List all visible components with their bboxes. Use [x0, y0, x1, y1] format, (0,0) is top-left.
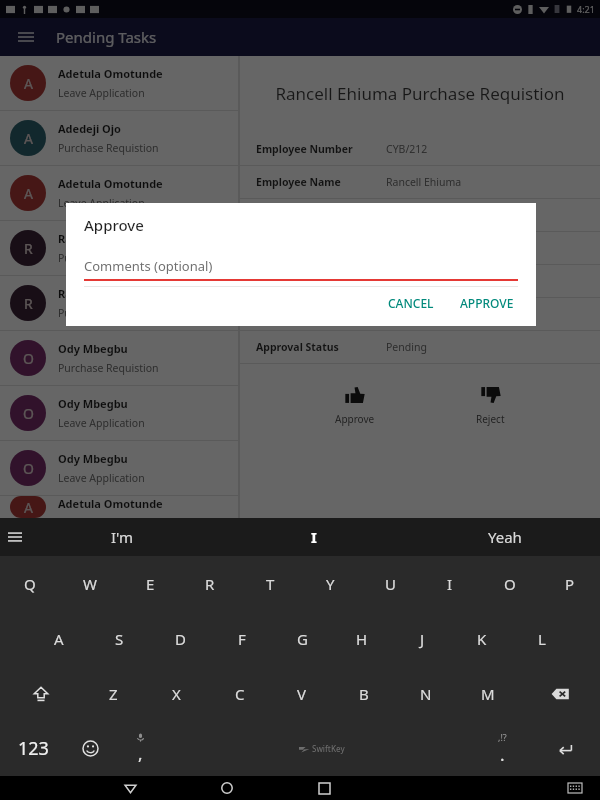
staticText: I: [311, 527, 317, 547]
staticText: R: [24, 294, 33, 313]
button[interactable]: A: [0, 56, 238, 110]
staticText: Ody Mbegbu: [58, 396, 128, 411]
button[interactable]: Q: [0, 556, 60, 611]
button[interactable]: H: [332, 611, 392, 666]
staticText: O: [23, 459, 34, 478]
button[interactable]: A: [0, 166, 238, 220]
button[interactable]: A: [28, 611, 89, 666]
staticText: Z: [109, 684, 118, 704]
staticText: Leave Application: [58, 196, 145, 210]
button[interactable]: ,!?: [476, 721, 529, 776]
staticText: Reject: [476, 412, 505, 426]
button[interactable]: I: [420, 556, 480, 611]
button[interactable]: ,: [114, 721, 167, 776]
staticText: Sick: [386, 307, 406, 321]
button[interactable]: K: [452, 611, 512, 666]
staticText: U: [385, 574, 396, 594]
button[interactable]: Shift: [0, 666, 82, 721]
staticText: 6: [386, 274, 393, 288]
button[interactable]: A: [0, 111, 238, 165]
staticText: H: [356, 629, 368, 649]
button[interactable]: Yeah: [409, 518, 600, 556]
staticText: Rancell Ehiuma Purchase Requistion: [254, 82, 586, 105]
button[interactable]: APPROVE: [452, 287, 522, 318]
staticText: Adetula Omotunde: [58, 66, 163, 81]
button[interactable]: X: [145, 666, 208, 721]
button[interactable]: Approve: [329, 378, 381, 432]
staticText: Leave Application: [58, 86, 145, 100]
staticText: Purchase Requistion: [58, 361, 159, 375]
button[interactable]: Enter: [529, 721, 600, 776]
button[interactable]: Open navigation menu: [10, 21, 42, 53]
button[interactable]: Home: [210, 776, 244, 800]
staticText: E: [146, 574, 155, 594]
staticText: A: [24, 129, 33, 148]
button[interactable]: D: [150, 611, 211, 666]
button[interactable]: Switch keyboard: [558, 776, 592, 800]
staticText: CYB/212: [386, 142, 428, 156]
button[interactable]: I'm: [26, 518, 218, 556]
button[interactable]: V: [271, 666, 333, 721]
button[interactable]: Keyboard menu: [0, 522, 30, 552]
staticText: Ody Mbegbu: [58, 451, 128, 466]
button[interactable]: W: [60, 556, 120, 611]
staticText: Leave Application: [58, 471, 145, 485]
staticText: Rancell Ehiuma: [386, 175, 462, 189]
button[interactable]: O: [0, 331, 238, 385]
staticText: M: [481, 684, 495, 704]
button[interactable]: R: [180, 556, 240, 611]
button[interactable]: I: [218, 518, 409, 556]
staticText: Rancell Ehiuma: [58, 231, 142, 246]
staticText: ,: [138, 742, 143, 765]
staticText: S: [115, 629, 124, 649]
button[interactable]: U: [360, 556, 420, 611]
staticText: Adetula Omotunde: [58, 176, 163, 191]
staticText: Comments (optional): [84, 257, 213, 275]
button[interactable]: 123: [0, 721, 66, 776]
staticText: O: [23, 349, 34, 368]
button[interactable]: C: [208, 666, 271, 721]
staticText: Yeah: [488, 527, 522, 547]
staticText: I'm: [111, 527, 134, 547]
button[interactable]: J: [392, 611, 452, 666]
button[interactable]: Backspace: [519, 666, 600, 721]
staticText: K: [477, 629, 487, 649]
button[interactable]: B: [333, 666, 395, 721]
button[interactable]: P: [540, 556, 600, 611]
button[interactable]: O: [480, 556, 540, 611]
button[interactable]: L: [512, 611, 572, 666]
button[interactable]: T: [240, 556, 300, 611]
button[interactable]: CANCEL: [380, 287, 442, 318]
staticText: 123: [18, 736, 49, 761]
staticText: Leave Application: [58, 416, 145, 430]
staticText: CANCEL: [388, 295, 434, 310]
button[interactable]: Z: [82, 666, 145, 721]
button[interactable]: N: [395, 666, 457, 721]
button[interactable]: F: [211, 611, 272, 666]
button[interactable]: G: [272, 611, 332, 666]
staticText: W: [83, 574, 97, 594]
button[interactable]: E: [120, 556, 180, 611]
button[interactable]: R: [0, 221, 238, 275]
button[interactable]: Reject: [470, 378, 511, 432]
staticText: P: [565, 574, 575, 594]
button[interactable]: Recent apps: [307, 776, 341, 800]
button[interactable]: R: [0, 276, 238, 330]
staticText: T: [266, 574, 275, 594]
button[interactable]: Back: [113, 776, 147, 800]
button[interactable]: O: [0, 441, 238, 495]
button[interactable]: O: [0, 386, 238, 440]
staticText: Rancell Ehiuma: [58, 286, 142, 301]
staticText: O: [23, 404, 34, 423]
button[interactable]: M: [457, 666, 519, 721]
staticText: Q: [24, 574, 36, 594]
button[interactable]: Y: [300, 556, 360, 611]
button[interactable]: Emoji: [66, 721, 114, 776]
button[interactable]: Space: [167, 721, 476, 776]
button[interactable]: S: [89, 611, 150, 666]
staticText: A: [54, 629, 64, 649]
button[interactable]: A: [0, 496, 238, 518]
